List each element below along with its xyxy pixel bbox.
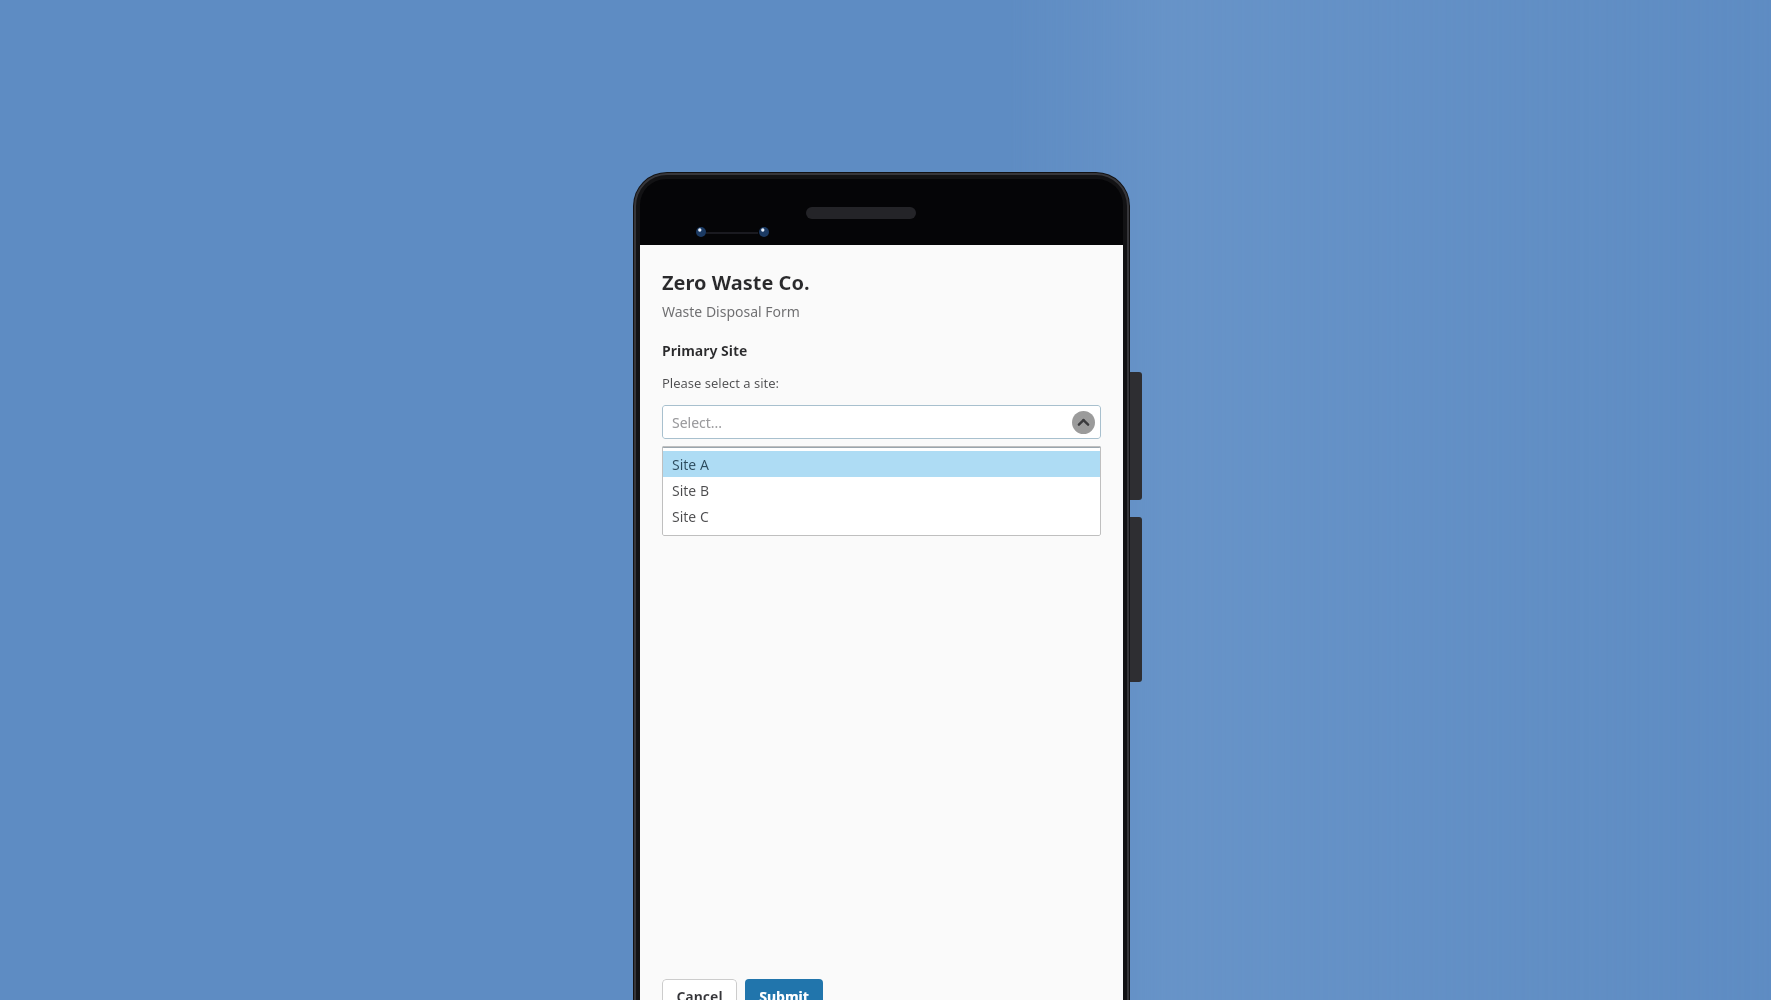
staticText: Zero Waste Co. — [662, 269, 810, 296]
staticText: Site C — [672, 507, 709, 526]
staticText: Submit — [759, 987, 809, 1000]
staticText: Cancel — [676, 987, 723, 1000]
staticText: Site B — [672, 481, 709, 500]
staticText: Please select a site: — [662, 374, 780, 392]
button[interactable]: Site C — [662, 503, 1101, 529]
button[interactable]: Cancel — [662, 979, 737, 1000]
button[interactable]: Site A — [662, 451, 1101, 477]
staticText: Select... — [672, 413, 723, 432]
staticText: Site A — [672, 455, 709, 474]
button[interactable]: Site B — [662, 477, 1101, 503]
staticText: Waste Disposal Form — [662, 302, 800, 321]
staticText: Primary Site — [662, 341, 748, 360]
button[interactable]: Close site dropdown — [1072, 411, 1095, 434]
button[interactable]: Select... — [662, 405, 1101, 439]
button[interactable]: Submit — [745, 979, 823, 1000]
